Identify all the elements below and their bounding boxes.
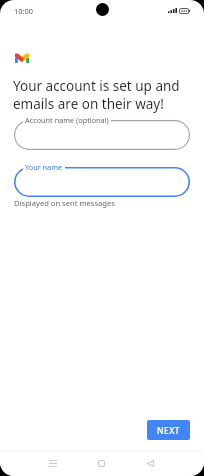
staticText: Your name	[25, 162, 63, 172]
staticText: Your account is set up and emails are on…	[13, 77, 180, 113]
staticText: 10:00	[14, 6, 33, 16]
button[interactable]: Account name (optional)	[14, 120, 190, 150]
staticText: NEXT	[157, 425, 181, 436]
staticText: Account name (optional)	[25, 115, 109, 125]
button[interactable]: Back	[138, 451, 162, 476]
staticText: Displayed on sent messages	[14, 198, 115, 208]
button[interactable]: NEXT	[147, 420, 190, 440]
button[interactable]: Menu	[41, 451, 65, 476]
button[interactable]: Home	[89, 451, 113, 476]
button[interactable]: Your name	[14, 167, 190, 197]
